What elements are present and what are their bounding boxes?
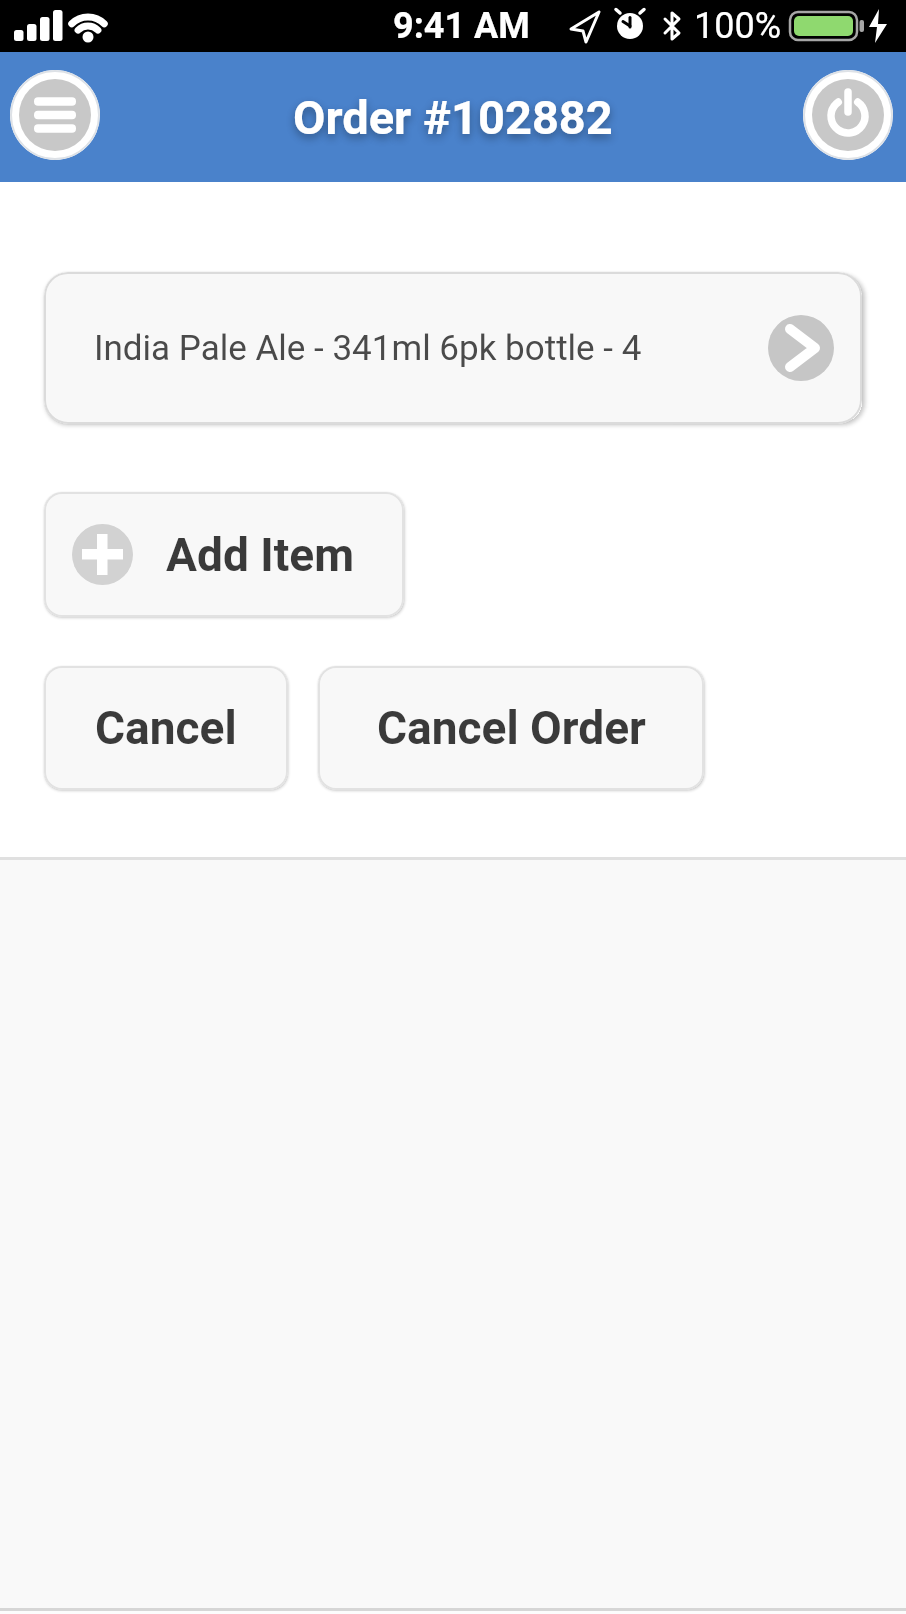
staticText: Add Item	[166, 528, 354, 582]
button[interactable]	[803, 70, 893, 160]
staticText: 9:41 AM	[393, 5, 530, 47]
button[interactable]: Cancel Order	[318, 666, 704, 790]
button[interactable]	[10, 70, 100, 160]
staticText: India Pale Ale - 341ml 6pk bottle - 4	[94, 328, 642, 369]
staticText: Order #102882	[293, 90, 613, 145]
staticText: Cancel	[95, 701, 237, 755]
staticText: Cancel Order	[377, 701, 646, 755]
button[interactable]: Cancel	[44, 666, 288, 790]
staticText: 100%	[694, 5, 782, 47]
button[interactable]: India Pale Ale - 341ml 6pk bottle - 4	[44, 272, 862, 424]
button[interactable]: Add Item	[44, 492, 404, 617]
